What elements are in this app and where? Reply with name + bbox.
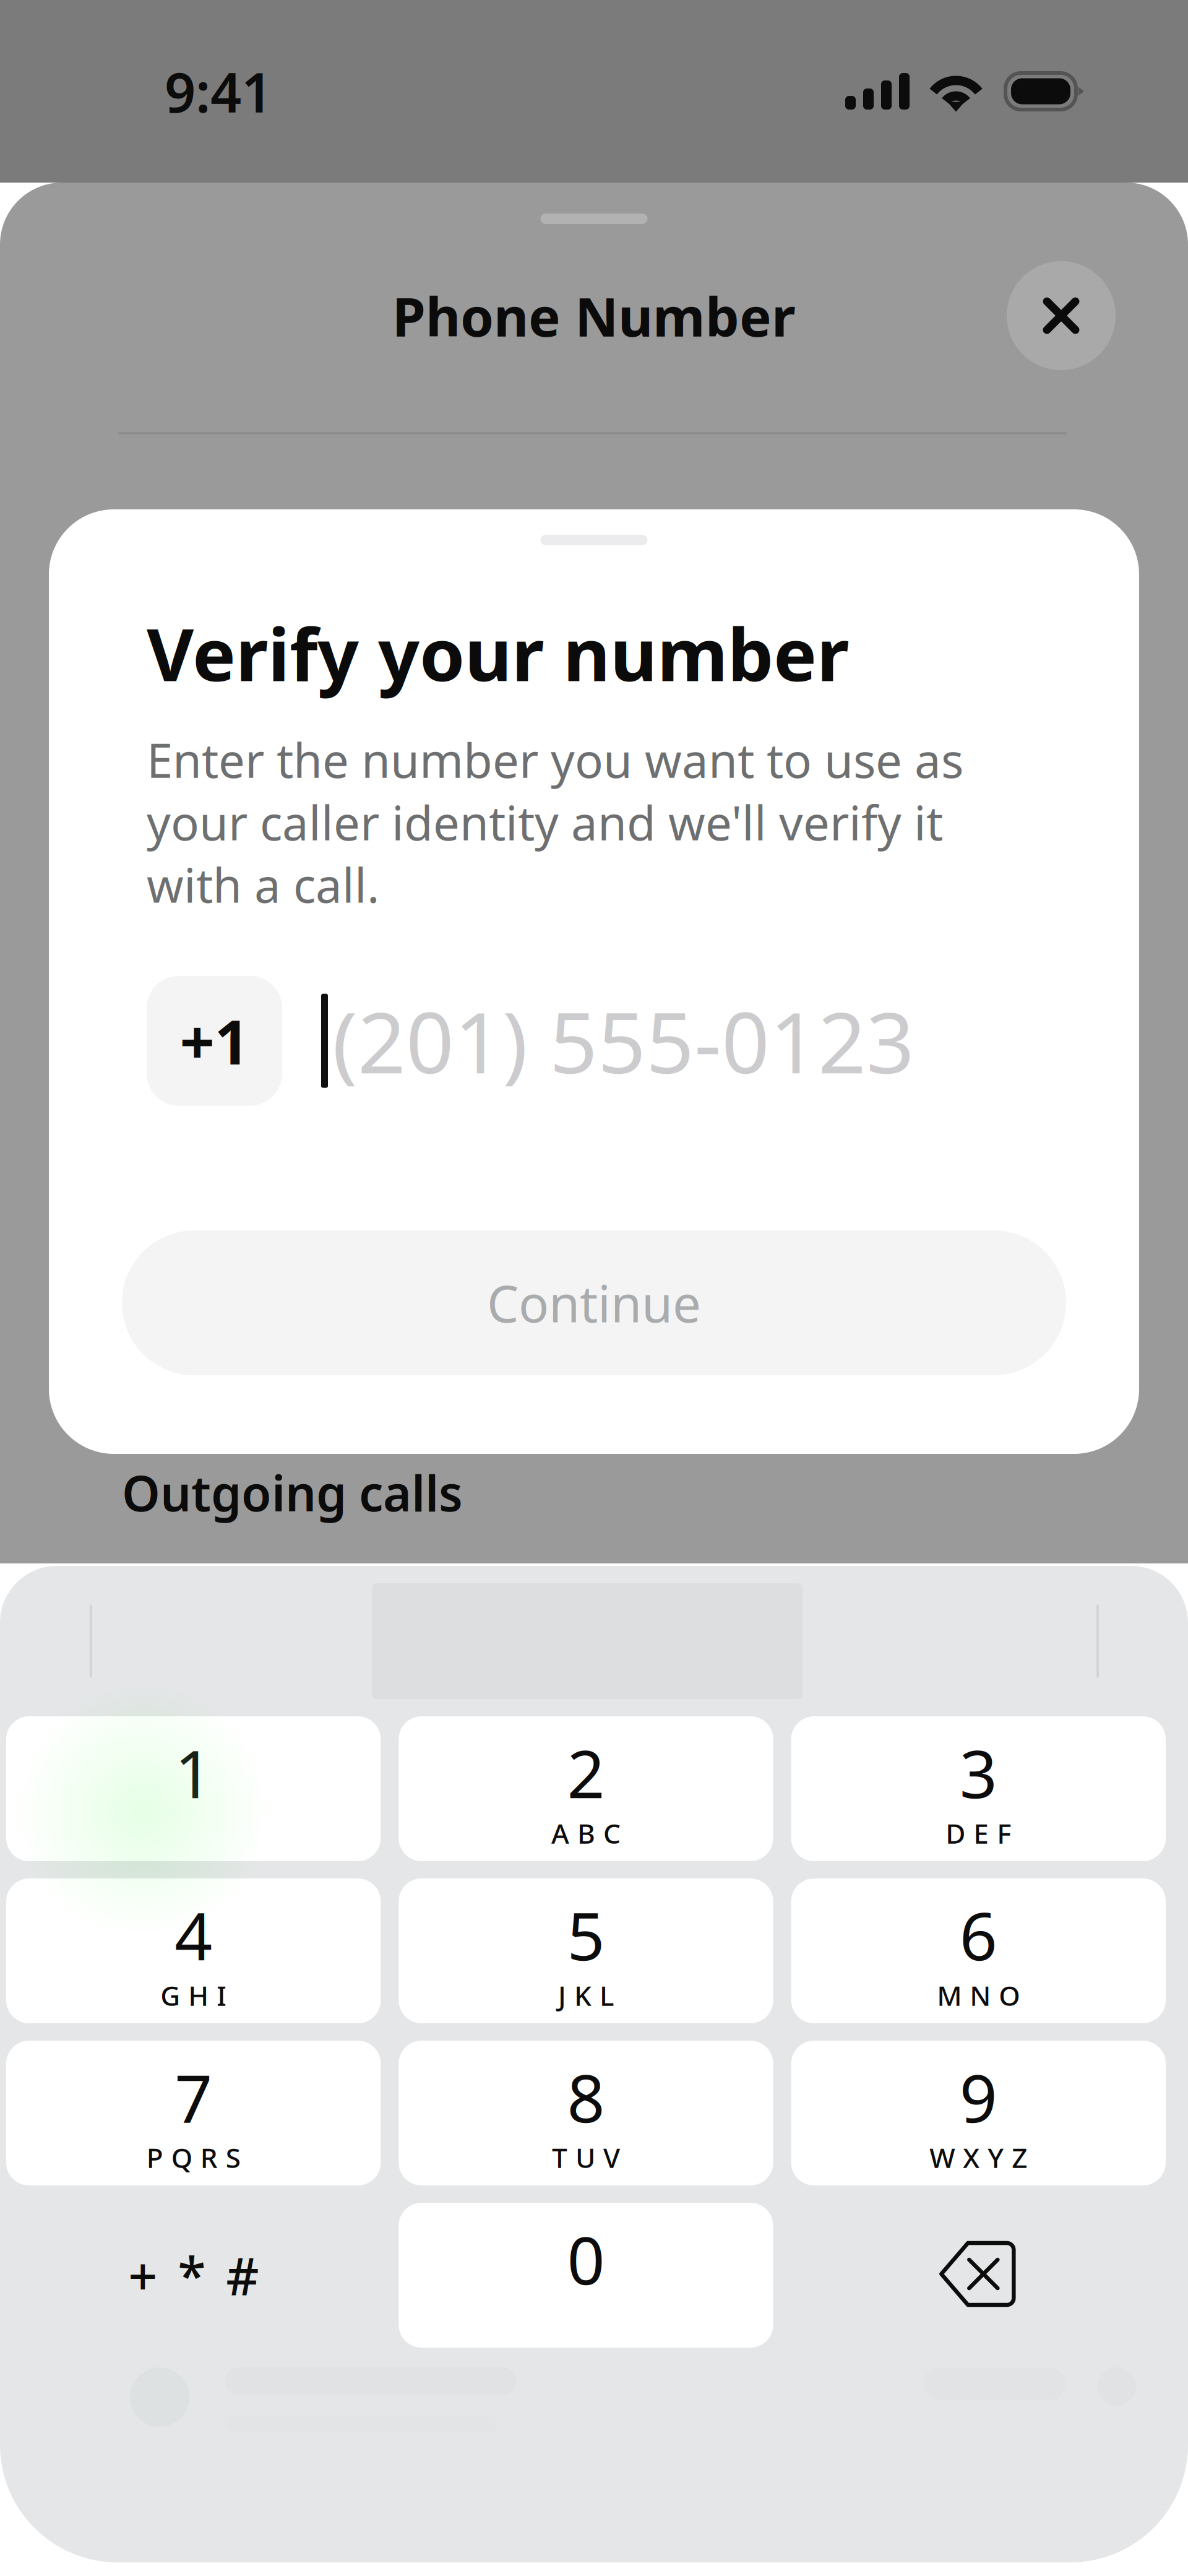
staticText: your caller identity and we'll verify it — [147, 791, 943, 853]
staticText: 9:41 — [165, 55, 272, 128]
button[interactable]: +1 — [147, 976, 282, 1106]
staticText: JKL — [558, 1977, 614, 2013]
staticText: Verify your number — [147, 605, 849, 701]
button[interactable]: 2 — [399, 1716, 773, 1861]
staticText: + * # — [128, 2241, 259, 2309]
button[interactable]: 4 — [6, 1878, 381, 2023]
staticText: MNO — [937, 1977, 1020, 2013]
staticText: Continue — [487, 1269, 701, 1336]
button[interactable]: 0 — [399, 2203, 773, 2348]
staticText: TUV — [552, 2139, 620, 2176]
staticText: 7 — [175, 2053, 212, 2141]
staticText: 1 — [175, 1729, 212, 1816]
staticText: Phone Number — [392, 280, 796, 351]
staticText: ABC — [551, 1815, 621, 1851]
staticText: GHI — [160, 1977, 227, 2013]
staticText: PQRS — [146, 2139, 241, 2176]
button[interactable]: 1 — [6, 1716, 381, 1861]
button[interactable]: 7 — [6, 2041, 381, 2185]
staticText: 0 — [567, 2215, 605, 2303]
button[interactable]: 9 — [791, 2041, 1166, 2185]
staticText: Enter the number you want to use as — [147, 728, 963, 791]
staticText: 9 — [960, 2053, 997, 2141]
staticText: WXYZ — [930, 2139, 1027, 2176]
button[interactable]: 5 — [399, 1878, 773, 2023]
staticText: 3 — [960, 1729, 997, 1816]
staticText: 5 — [567, 1891, 605, 1978]
staticText: +1 — [180, 1000, 249, 1081]
staticText: with a call. — [147, 853, 379, 916]
button[interactable]: 3 — [791, 1716, 1166, 1861]
staticText: (201) 555-0123 — [332, 985, 915, 1097]
button[interactable]: Delete — [791, 2203, 1166, 2348]
staticText: 4 — [175, 1891, 212, 1978]
staticText: 2 — [567, 1729, 605, 1816]
staticText: DEF — [946, 1815, 1011, 1851]
staticText: Outgoing calls — [122, 1460, 463, 1525]
button[interactable]: Close — [1007, 261, 1116, 370]
staticText: 8 — [567, 2053, 605, 2141]
button[interactable]: 6 — [791, 1878, 1166, 2023]
button[interactable]: 8 — [399, 2041, 773, 2185]
staticText: 6 — [960, 1891, 997, 1978]
button[interactable]: Continue — [122, 1230, 1066, 1375]
button[interactable]: plus star hash — [6, 2203, 381, 2348]
